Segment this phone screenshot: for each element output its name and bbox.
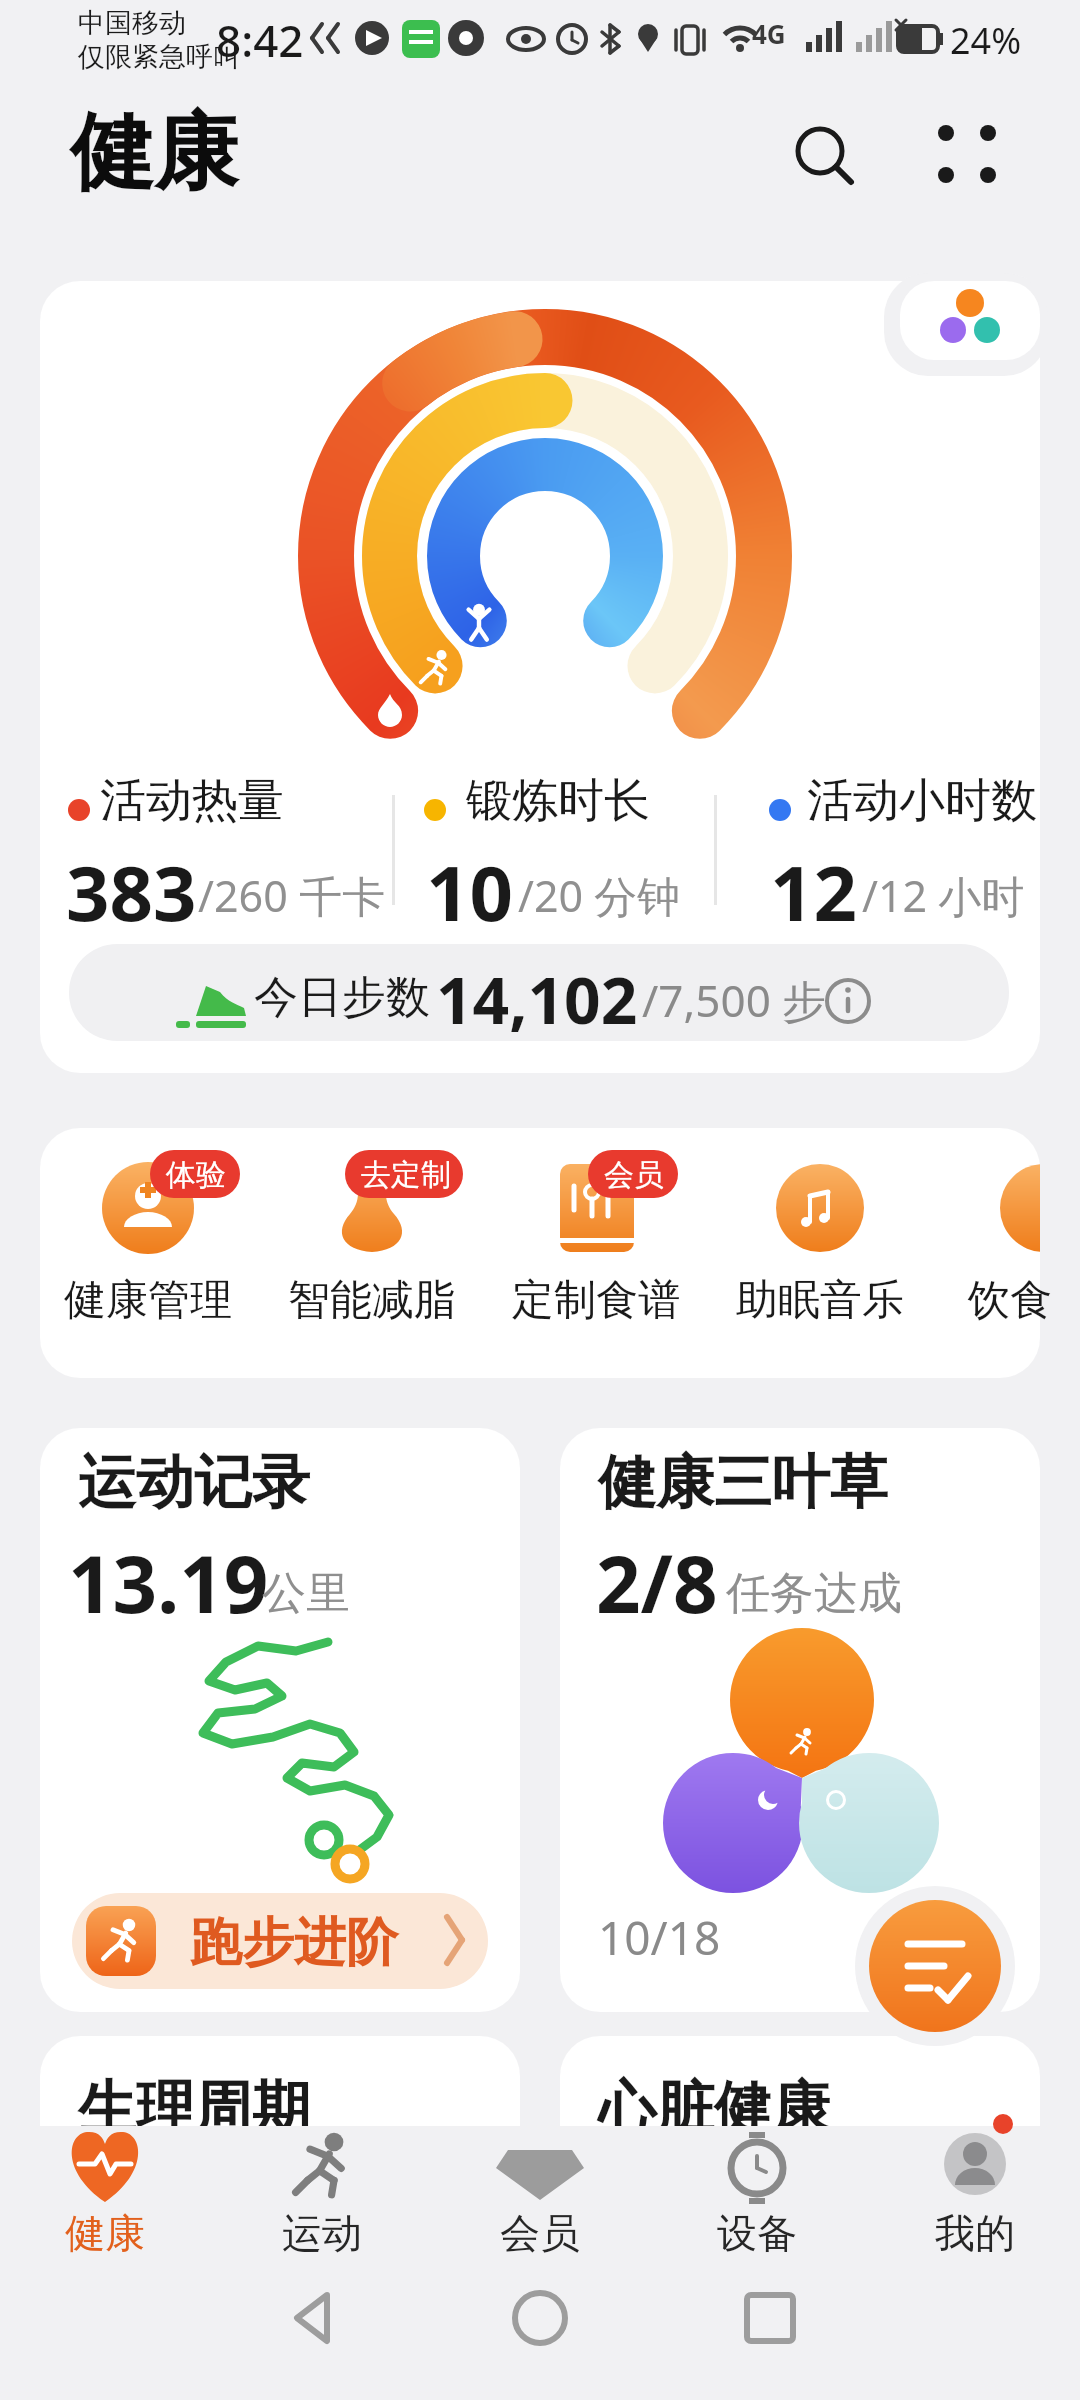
staticText: 会员: [604, 1156, 664, 1194]
staticText: /7,500 步: [642, 970, 827, 1030]
button[interactable]: [904, 2126, 1080, 2266]
staticText: 运动: [282, 2208, 362, 2258]
button[interactable]: [69, 944, 1009, 1041]
staticText: 24%: [950, 16, 1022, 65]
button[interactable]: [984, 1160, 1080, 1340]
staticText: 运动记录: [78, 1446, 310, 1519]
staticText: /260 千卡: [198, 866, 385, 925]
button[interactable]: [869, 1900, 1001, 2032]
button[interactable]: [256, 2126, 472, 2266]
staticText: 去定制: [361, 1156, 451, 1194]
button[interactable]: [688, 2126, 904, 2266]
button[interactable]: [40, 281, 1040, 1073]
staticText: 中国移动: [78, 6, 186, 40]
staticText: 健康三叶草: [598, 1446, 888, 1519]
staticText: 会员: [500, 2208, 580, 2258]
button[interactable]: [760, 1160, 880, 1340]
staticText: 助眠音乐: [736, 1274, 904, 1327]
staticText: 健康管理: [64, 1274, 232, 1327]
staticText: 12: [770, 840, 857, 944]
button[interactable]: 心脏健康: [560, 2036, 1040, 2126]
staticText: 健康: [65, 2208, 145, 2258]
button[interactable]: [472, 2126, 688, 2266]
button[interactable]: [40, 1128, 1040, 1378]
staticText: 今日步数: [254, 970, 430, 1025]
staticText: /12 小时: [862, 866, 1025, 925]
button[interactable]: [88, 1160, 208, 1340]
button[interactable]: [312, 1160, 432, 1340]
button[interactable]: 生理周期: [40, 2036, 520, 2126]
staticText: 8:42: [216, 10, 304, 70]
staticText: 10: [426, 840, 513, 944]
staticText: 4G: [752, 16, 786, 51]
button[interactable]: [930, 118, 1005, 193]
staticText: 任务达成: [726, 1566, 902, 1621]
staticText: 饮食: [968, 1274, 1052, 1327]
staticText: 活动热量: [100, 772, 284, 830]
button[interactable]: [536, 1160, 656, 1340]
staticText: 我的: [935, 2208, 1015, 2258]
staticText: 智能减脂: [288, 1274, 456, 1327]
staticText: 定制食谱: [512, 1274, 680, 1327]
button[interactable]: [40, 1428, 520, 2012]
staticText: 生理周期: [78, 2072, 310, 2126]
button[interactable]: [560, 1428, 1040, 2012]
staticText: 10/18: [598, 1906, 721, 1969]
staticText: 14,102: [436, 956, 638, 1043]
button[interactable]: [790, 120, 860, 190]
staticText: 2/8: [596, 1530, 718, 1636]
staticText: 健康: [70, 100, 238, 206]
staticText: /20 分钟: [518, 866, 681, 925]
staticText: 设备: [717, 2208, 797, 2258]
staticText: 仅限紧急呼叫: [78, 40, 240, 74]
staticText: 体验: [166, 1156, 226, 1194]
staticText: 心脏健康: [598, 2072, 830, 2126]
staticText: 活动小时数: [807, 772, 1037, 830]
button[interactable]: [40, 2126, 256, 2266]
button[interactable]: [72, 1893, 488, 1989]
staticText: 13.19: [68, 1530, 269, 1636]
staticText: 383: [66, 840, 197, 944]
staticText: 跑步进阶: [190, 1910, 398, 1976]
button[interactable]: [900, 281, 1040, 361]
staticText: 公里: [262, 1566, 350, 1621]
staticText: 锻炼时长: [466, 772, 650, 830]
